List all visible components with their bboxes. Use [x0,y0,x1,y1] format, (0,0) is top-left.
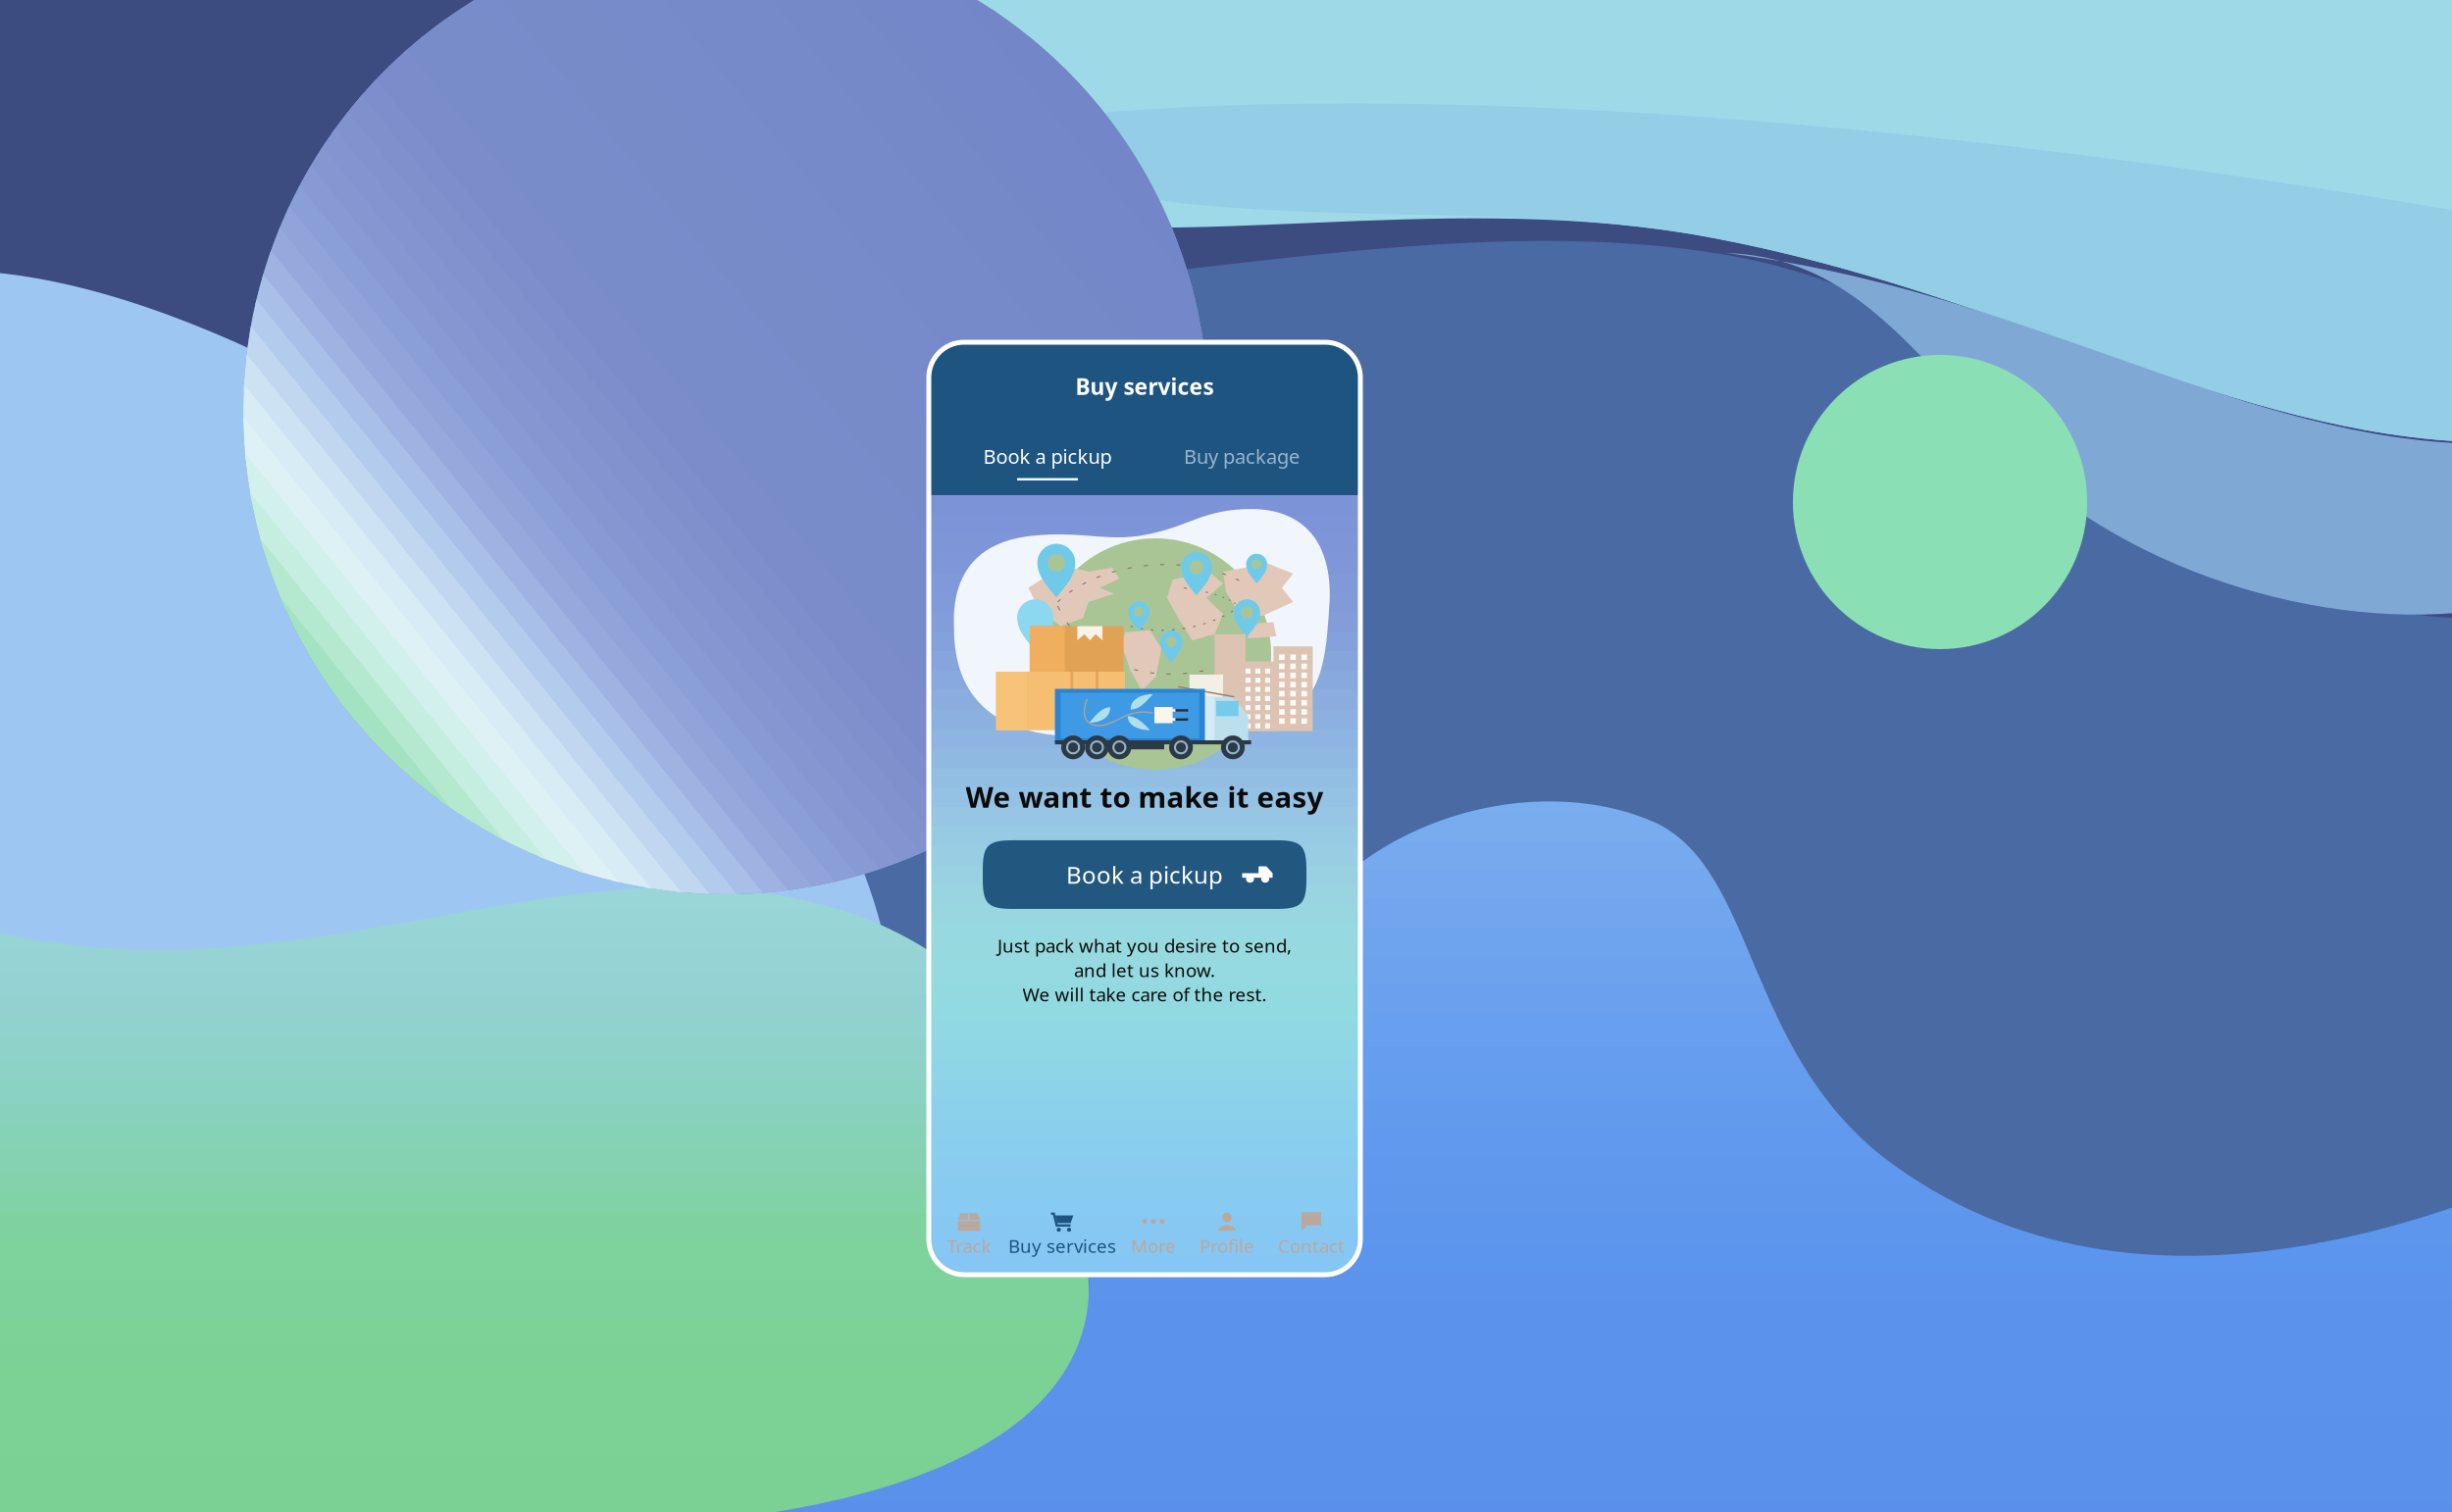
button[interactable]: Book a pickup [983,840,1306,909]
staticText: Buy package [1184,443,1300,469]
staticText: Buy services [1075,372,1214,401]
button[interactable]: Profile [1188,1211,1266,1258]
button[interactable]: Book a pickup [950,443,1145,480]
staticText: Just pack what you desire to send, [997,933,1292,958]
staticText: We will take care of the rest. [1022,982,1267,1006]
staticText: Book a pickup [983,443,1112,469]
button[interactable]: Buy services [1005,1211,1119,1258]
button[interactable]: More [1119,1211,1188,1258]
staticText: Profile [1200,1234,1254,1258]
staticText: More [1131,1234,1176,1258]
staticText: We want to make it easy [966,778,1324,816]
staticText: and let us know. [1074,958,1215,982]
button[interactable]: Track [933,1211,1005,1258]
staticText: Track [947,1234,991,1258]
button[interactable]: Contact [1266,1211,1356,1258]
staticText: Book a pickup [1066,859,1223,890]
button[interactable]: Buy package [1145,443,1339,480]
staticText: Buy services [1008,1234,1116,1258]
staticText: Contact [1278,1234,1345,1258]
